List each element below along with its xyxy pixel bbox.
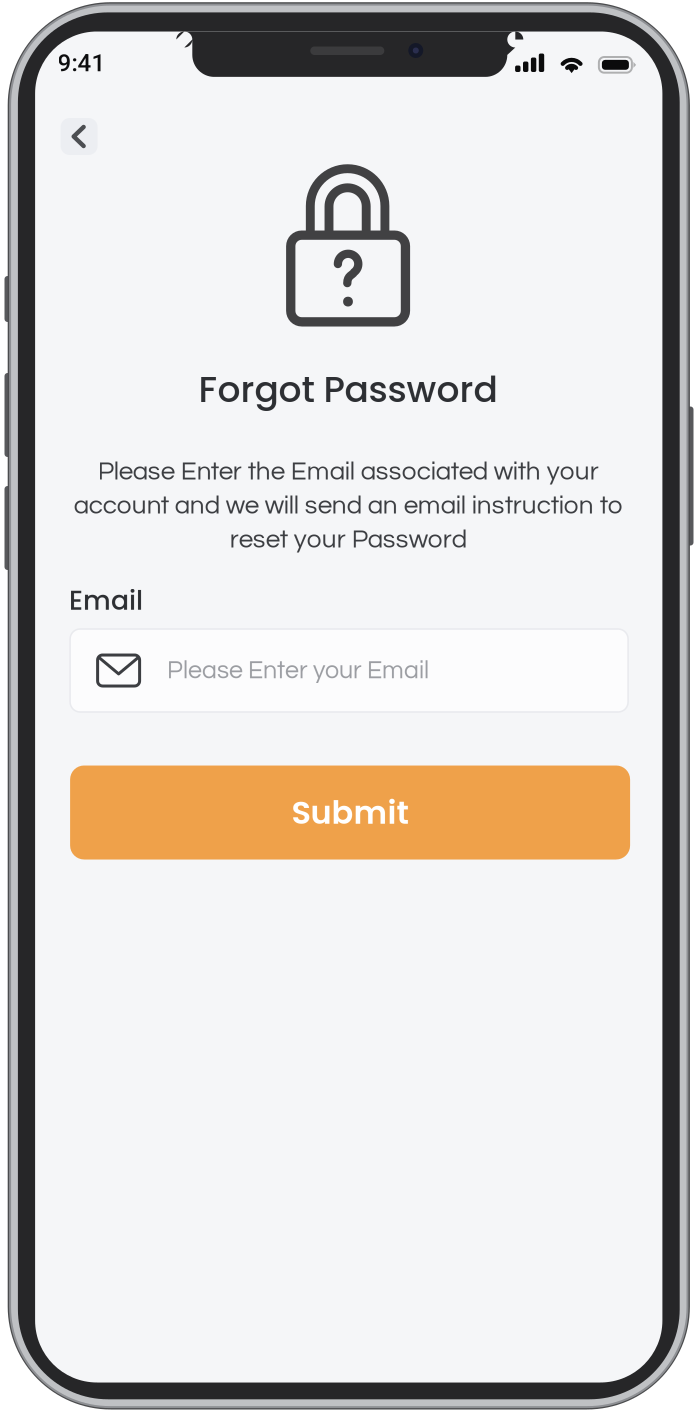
staticText: account and we will send an email instru…	[74, 492, 623, 519]
staticText: Please Enter your Email	[167, 658, 429, 683]
staticText: Forgot Password	[199, 364, 498, 415]
staticText: Submit	[292, 790, 409, 835]
staticText: 9:41	[58, 49, 106, 77]
button[interactable]: Submit	[70, 765, 630, 859]
staticText: reset your Password	[230, 526, 467, 553]
staticText: Email	[69, 582, 143, 619]
button[interactable]: Back	[61, 118, 98, 155]
staticText: Please Enter the Email associated with y…	[98, 458, 599, 485]
button[interactable]: Please Enter your Email	[70, 629, 628, 712]
